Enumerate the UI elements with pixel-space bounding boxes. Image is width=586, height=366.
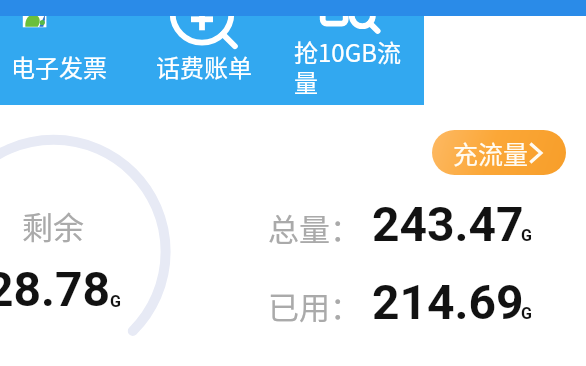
staticText: 量 [294,64,318,99]
staticText: 已用： [268,283,361,328]
button[interactable]: 抢10GB流量 [278,16,424,105]
staticText: 充流量 [453,135,529,171]
button[interactable]: 电子发票 [0,16,132,105]
staticText: 243.47 [372,196,524,252]
staticText: 28.78 [0,261,111,317]
staticText: 214.69 [372,274,524,330]
staticText: G [110,292,121,311]
staticText: 总量： [268,205,361,250]
button[interactable]: 充流量 [432,130,566,175]
staticText: G [521,226,532,245]
button[interactable]: 话费账单 [132,16,278,105]
staticText: 话费账单 [156,49,252,84]
staticText: 电子发票 [11,49,107,84]
staticText: 抢10GB流 [294,34,401,69]
staticText: G [521,304,532,323]
staticText: 剩余 [22,203,84,248]
